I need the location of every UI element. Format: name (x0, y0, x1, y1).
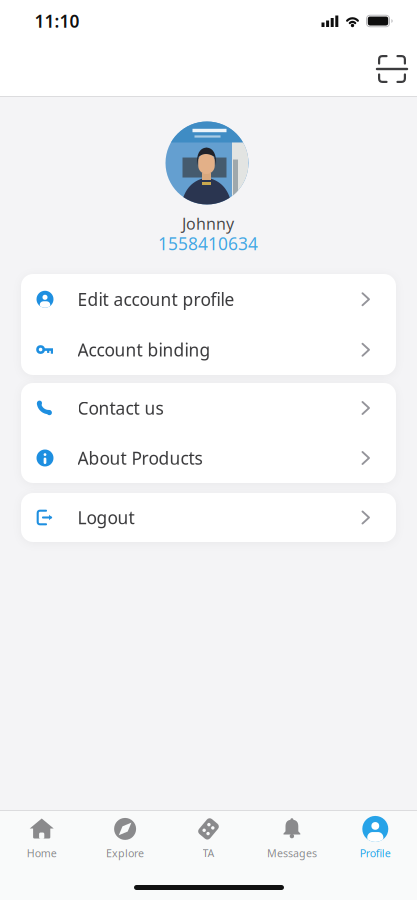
button[interactable]: Explore (85, 815, 165, 861)
button[interactable]: Messages (252, 815, 332, 861)
staticText: Johnny (182, 213, 234, 234)
staticText: Home (27, 846, 57, 860)
staticText: 11:10 (34, 9, 79, 32)
button[interactable]: Scan (375, 52, 409, 86)
button[interactable]: About Products (21, 433, 396, 483)
staticText: Profile (360, 846, 391, 860)
button[interactable]: Logout (21, 493, 396, 542)
staticText: Contact us (77, 396, 163, 419)
staticText: Explore (106, 846, 144, 860)
button[interactable]: Contact us (21, 383, 396, 433)
button[interactable]: Home (2, 815, 82, 861)
button[interactable]: Account binding (21, 324, 396, 375)
staticText: 1558410634 (158, 232, 258, 255)
staticText: Messages (267, 846, 317, 860)
staticText: Logout (77, 506, 134, 529)
button[interactable]: Profile (335, 815, 415, 861)
staticText: About Products (77, 446, 202, 469)
staticText: TA (202, 846, 214, 860)
staticText: Account binding (77, 338, 210, 361)
staticText: Edit account profile (77, 288, 234, 311)
button[interactable]: Edit account profile (21, 274, 396, 324)
button[interactable]: TA (168, 815, 248, 861)
